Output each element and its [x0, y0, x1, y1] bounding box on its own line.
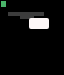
button[interactable]	[29, 18, 49, 29]
